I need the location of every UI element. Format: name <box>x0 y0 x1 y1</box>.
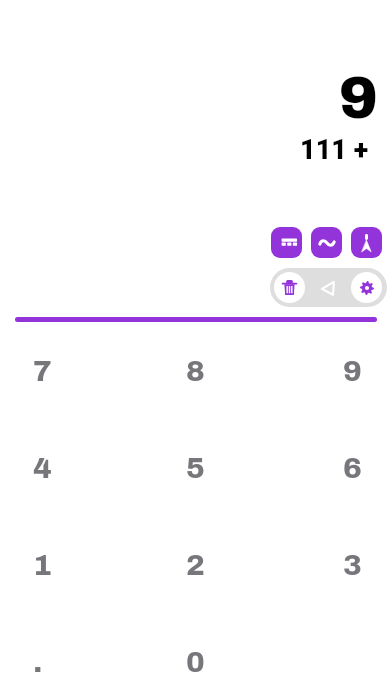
button[interactable]: 7 <box>0 323 130 420</box>
button[interactable]: Clear <box>274 272 305 303</box>
button[interactable]: 2 <box>130 517 261 614</box>
button[interactable]: 1 <box>0 517 130 614</box>
button[interactable]: Unit converter <box>351 227 382 258</box>
staticText: 5 <box>186 452 205 485</box>
staticText: 1 <box>33 549 52 582</box>
button[interactable]: 4 <box>0 420 130 517</box>
button[interactable]: Scientific functions <box>311 227 342 258</box>
button[interactable]: . <box>0 614 130 696</box>
staticText: 9 <box>339 67 378 130</box>
button[interactable]: 3 <box>261 517 392 614</box>
button[interactable]: 5 <box>130 420 261 517</box>
staticText: . <box>33 646 43 679</box>
staticText: 0 <box>186 646 205 679</box>
staticText: 9 <box>343 355 362 388</box>
button[interactable]: Settings <box>351 272 382 303</box>
button[interactable]: 9 <box>261 323 392 420</box>
button[interactable]: 0 <box>130 614 261 696</box>
staticText: 2 <box>186 549 205 582</box>
staticText: 3 <box>343 549 362 582</box>
button[interactable]: 8 <box>130 323 261 420</box>
staticText: 4 <box>33 452 52 485</box>
staticText: 7 <box>33 355 52 388</box>
button[interactable]: 6 <box>261 420 392 517</box>
button[interactable]: Backspace <box>305 272 351 303</box>
staticText: 111 + <box>300 134 369 166</box>
staticText: 8 <box>186 355 205 388</box>
button[interactable]: Numeric keypad <box>271 227 302 258</box>
staticText: 6 <box>343 452 362 485</box>
